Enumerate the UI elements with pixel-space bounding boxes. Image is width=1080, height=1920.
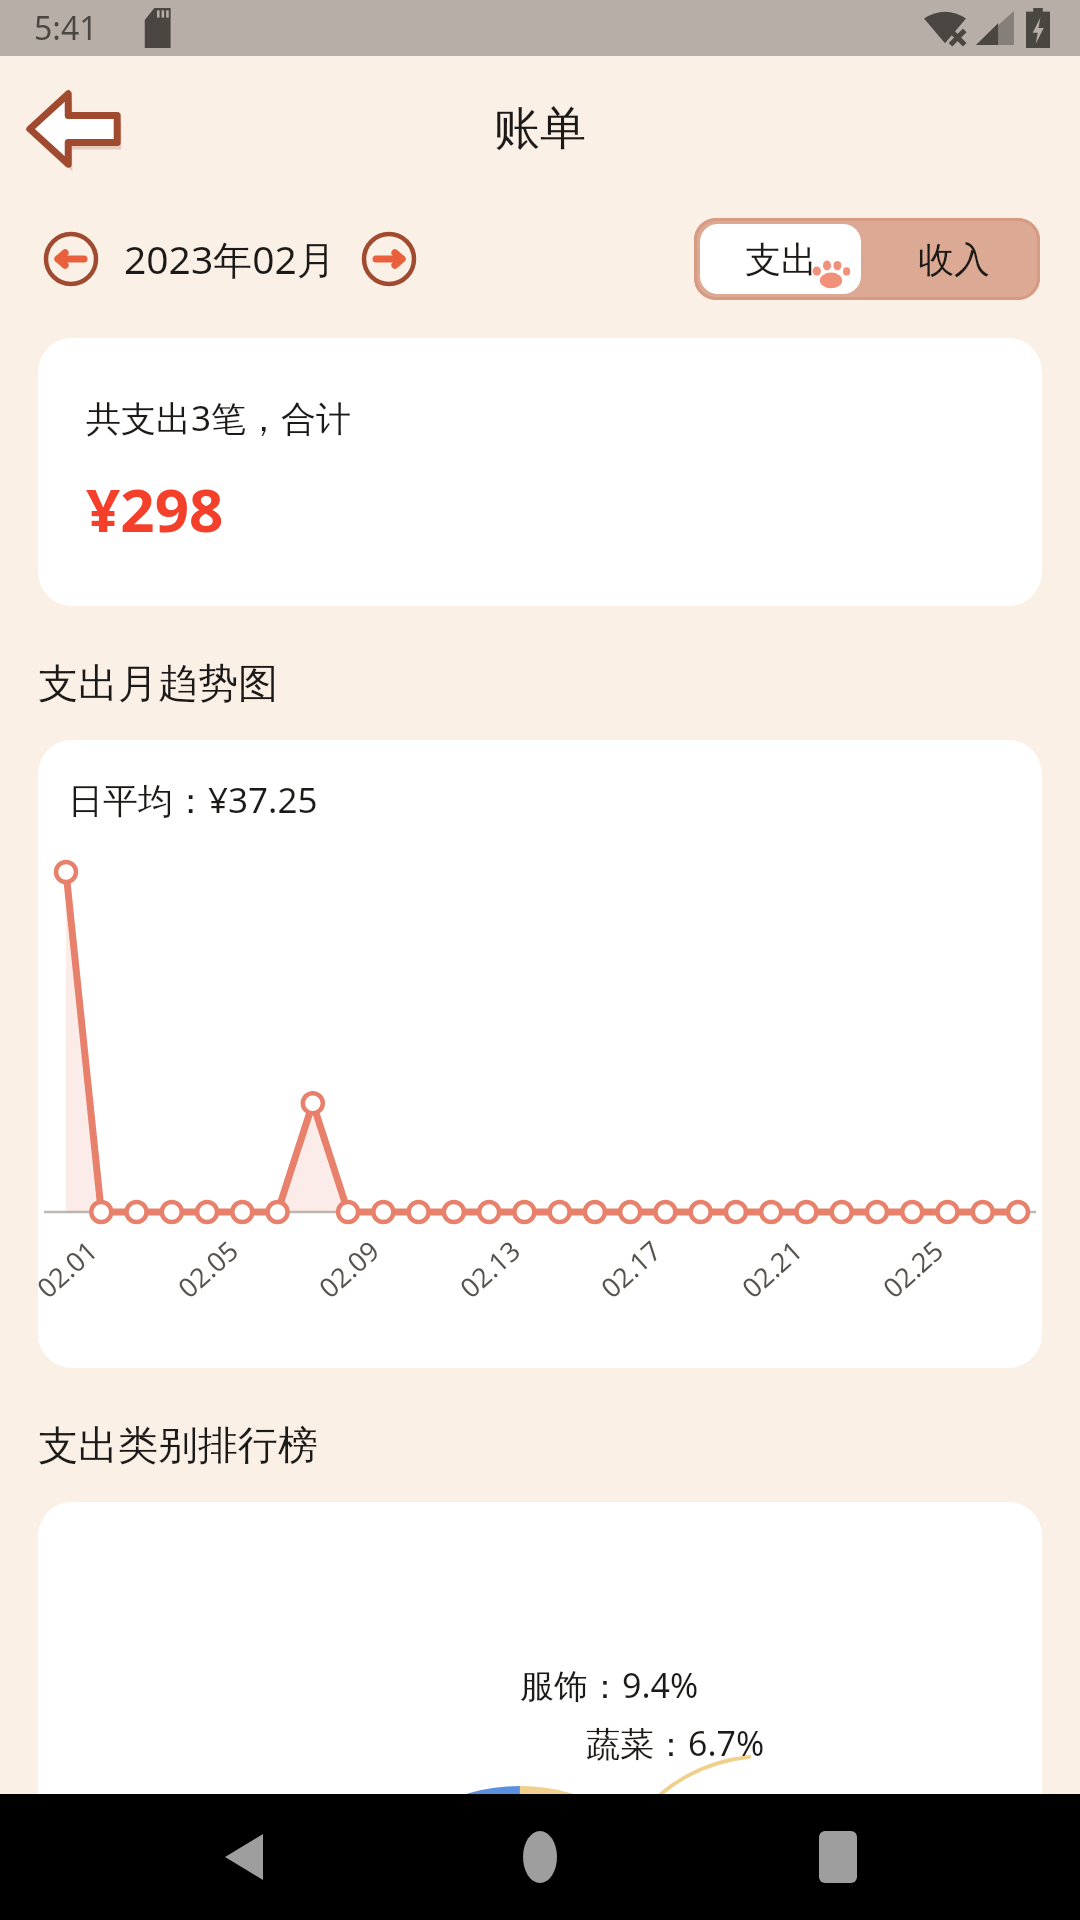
staticText: 5:41 [34, 6, 98, 50]
staticText: 日平均：¥37.25 [68, 776, 318, 824]
button[interactable]: 服饰：9.4% [38, 1502, 1042, 1920]
staticText: 支出月趋势图 [38, 658, 278, 708]
button[interactable]: Next month [358, 228, 420, 290]
button[interactable]: Back [22, 83, 126, 175]
button[interactable]: Previous month [40, 228, 102, 290]
staticText: 02.21 [734, 1231, 810, 1306]
staticText: 02.09 [311, 1231, 387, 1306]
staticText: 2023年02月 [124, 232, 336, 285]
button[interactable]: 日平均：¥37.25 [38, 740, 1042, 1368]
button[interactable]: Home [485, 1802, 595, 1912]
staticText: 共支出3笔，合计 [86, 394, 352, 442]
button[interactable]: Recent apps [783, 1802, 893, 1912]
staticText: 02.01 [38, 1231, 105, 1306]
staticText: 蔬菜：6.7% [586, 1720, 765, 1766]
staticText: 收入 [918, 237, 990, 282]
staticText: 账单 [494, 100, 586, 158]
staticText: 02.05 [170, 1231, 246, 1306]
staticText: 02.17 [593, 1231, 669, 1306]
button[interactable]: 支出 [700, 224, 861, 294]
button[interactable]: 共支出3笔，合计 [38, 338, 1042, 606]
staticText: 支出类别排行榜 [38, 1420, 318, 1470]
button[interactable]: 收入 [867, 218, 1040, 300]
staticText: 服饰：9.4% [520, 1662, 699, 1708]
staticText: 支出 [745, 237, 817, 282]
button[interactable]: Back [188, 1802, 298, 1912]
staticText: ¥298 [86, 468, 224, 550]
staticText: 02.25 [875, 1231, 951, 1306]
staticText: 02.13 [452, 1231, 528, 1306]
